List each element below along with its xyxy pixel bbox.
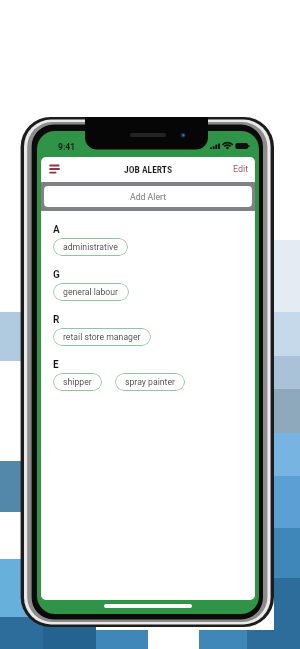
staticText: G xyxy=(53,269,60,281)
staticText: R xyxy=(53,314,60,326)
staticText: general labour xyxy=(63,287,119,297)
staticText: E xyxy=(53,359,59,371)
button[interactable]: Edit xyxy=(227,160,255,179)
button[interactable]: general labour xyxy=(53,283,129,301)
staticText: Add Alert xyxy=(130,192,167,202)
button[interactable]: Add Alert xyxy=(44,186,252,207)
staticText: A xyxy=(53,224,60,236)
button[interactable]: Menu xyxy=(43,159,65,181)
button[interactable]: administrative xyxy=(53,238,128,256)
staticText: spray painter xyxy=(125,377,175,387)
button[interactable]: shipper xyxy=(53,373,102,391)
staticText: administrative xyxy=(63,242,118,252)
staticText: JOB ALERTS xyxy=(124,164,173,175)
button[interactable]: spray painter xyxy=(115,373,185,391)
staticText: shipper xyxy=(63,377,92,387)
button[interactable]: retail store manager xyxy=(53,328,151,346)
staticText: retail store manager xyxy=(63,332,141,342)
staticText: Edit xyxy=(233,164,249,175)
staticText: 9:41 xyxy=(58,142,76,152)
